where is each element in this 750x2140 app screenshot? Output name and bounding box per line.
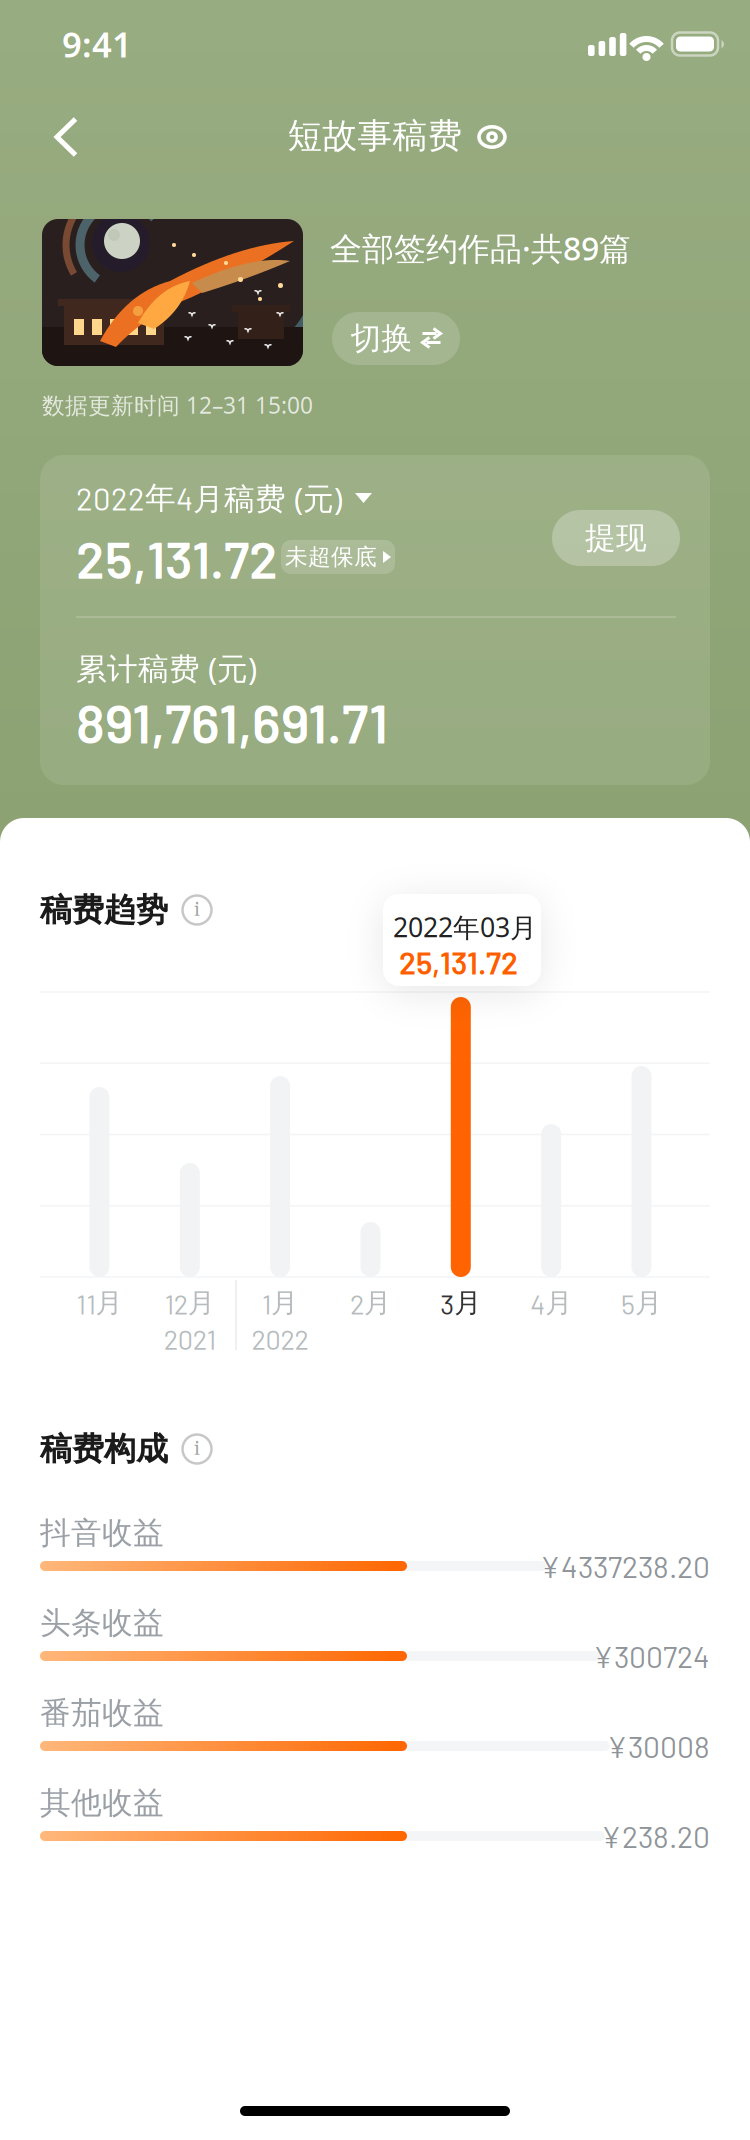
staticText: 9:41 (62, 21, 132, 67)
staticText: 2月 (350, 1286, 391, 1320)
staticText: 4 (176, 479, 193, 517)
staticText: 累计稿费 (元) (76, 648, 257, 688)
button[interactable]: Select month (76, 478, 372, 518)
button[interactable]: 3月 (451, 997, 471, 1277)
staticText: 2022年03月 (393, 909, 537, 945)
staticText: 1月 (262, 1286, 298, 1320)
staticText: 切换 (350, 320, 412, 357)
button[interactable]: Current work cover (42, 219, 303, 366)
staticText: 11月 (76, 1286, 122, 1320)
button[interactable]: Switch work (332, 312, 460, 365)
staticText: 其他收益 (40, 1784, 164, 1822)
staticText: 2021 (164, 1323, 216, 1355)
button[interactable]: About royalty composition (182, 1434, 212, 1464)
staticText: 短故事稿费 (287, 115, 462, 157)
staticText: 5月 (621, 1286, 662, 1320)
button[interactable]: About royalty trend (182, 895, 212, 925)
staticText: 番茄收益 (40, 1694, 164, 1732)
staticText: 年 (145, 479, 176, 517)
staticText: i (194, 1436, 200, 1462)
staticText: ¥238.20 (601, 1818, 710, 1854)
staticText: 全部签约作品·共89篇 (330, 227, 631, 269)
staticText: 提现 (585, 519, 647, 557)
staticText: 891,761,691.71 (76, 690, 388, 754)
button[interactable]: Withdraw (552, 510, 680, 566)
staticText: 数据更新时间 12–31 15:00 (42, 390, 313, 420)
staticText: 2022 (76, 479, 145, 517)
staticText: 3月 (440, 1286, 481, 1320)
staticText: 12月 (165, 1286, 215, 1320)
staticText: 抖音收益 (40, 1514, 164, 1552)
button[interactable]: Hide amounts (467, 112, 517, 162)
staticText: 稿费趋势 (40, 890, 168, 930)
staticText: i (194, 897, 200, 923)
staticText: 头条收益 (40, 1604, 164, 1642)
staticText: 未超保底 (285, 543, 377, 571)
button[interactable]: 2月 (360, 1222, 380, 1277)
staticText: ¥4337238.20 (540, 1548, 710, 1584)
staticText: 25,131.72 (399, 943, 518, 981)
staticText: 4月 (530, 1286, 572, 1320)
staticText: 稿费构成 (40, 1429, 168, 1469)
staticText: ¥30008 (607, 1728, 710, 1764)
staticText: ¥300724 (593, 1638, 710, 1674)
staticText: 25,131.72 (76, 527, 278, 589)
staticText: 月稿费 (元) (193, 478, 343, 518)
button[interactable]: Back (44, 115, 88, 159)
staticText: 2022 (252, 1323, 309, 1355)
button[interactable]: Below guarantee details (281, 540, 395, 574)
